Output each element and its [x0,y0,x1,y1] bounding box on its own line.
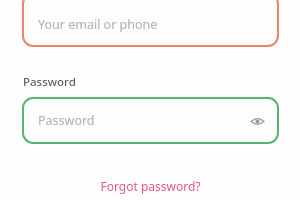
staticText: Forgot password? [100,178,201,194]
button[interactable]: Password [22,97,279,144]
button[interactable]: Your email or phone [22,0,279,47]
staticText: Password [38,112,95,129]
staticText: Your email or phone [38,16,158,33]
button[interactable]: Forgot password? [0,177,300,195]
button[interactable]: Show password [246,110,268,132]
staticText: Password [23,74,76,90]
